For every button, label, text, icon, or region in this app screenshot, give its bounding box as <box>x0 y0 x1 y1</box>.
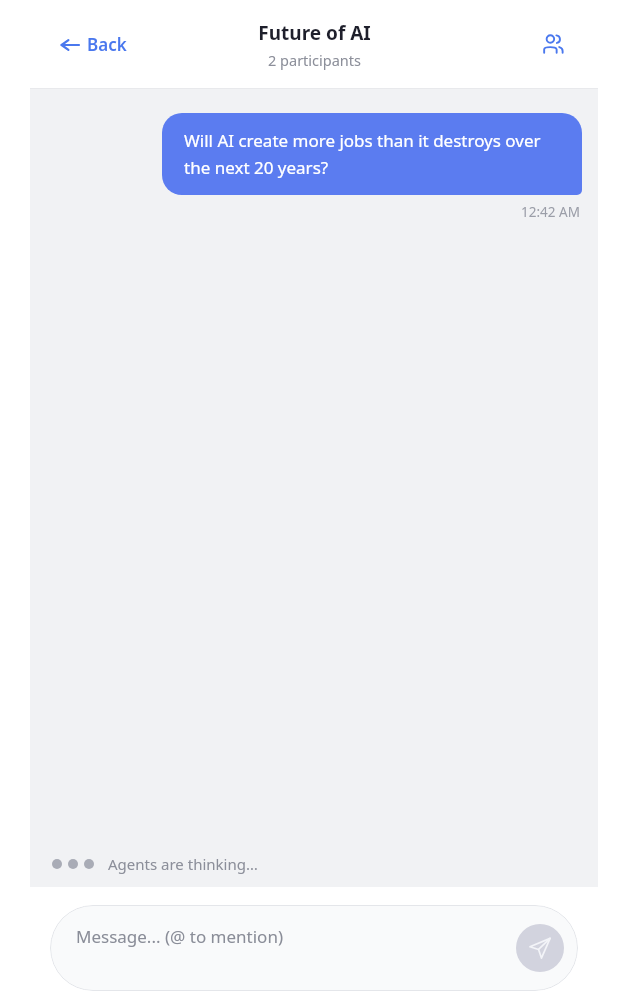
staticText: Future of AI <box>258 20 371 46</box>
staticText: 12:42 AM <box>521 203 580 221</box>
staticText: Back <box>87 33 127 56</box>
staticText: 2 participants <box>268 50 361 70</box>
button[interactable]: Message... (@ to mention) <box>50 905 578 991</box>
staticText: Message... (@ to mention) <box>76 925 284 948</box>
button[interactable]: Participants <box>534 26 572 64</box>
staticText: Will AI create more jobs than it destroy… <box>184 129 560 179</box>
staticText: Agents are thinking… <box>108 854 258 874</box>
button[interactable]: Send <box>516 924 564 972</box>
button[interactable]: Back <box>54 27 133 62</box>
button[interactable]: Will AI create more jobs than it destroy… <box>162 113 582 195</box>
